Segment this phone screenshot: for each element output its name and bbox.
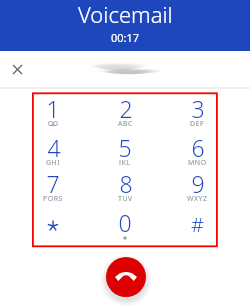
staticText: 0 [118, 207, 132, 238]
staticText: 9 [191, 168, 205, 199]
button[interactable]: Close [4, 56, 30, 82]
button[interactable] [23, 207, 83, 245]
button[interactable]: 3 [167, 93, 227, 131]
staticText: # [191, 211, 204, 238]
button[interactable]: 2 [95, 93, 155, 131]
button[interactable]: # [167, 207, 227, 245]
staticText: MNO [188, 158, 207, 165]
staticText: 7 [46, 168, 60, 199]
staticText: Voicemail [78, 0, 173, 29]
button[interactable]: 6 [167, 132, 227, 170]
staticText: JKL [119, 158, 131, 165]
staticText: GHI [46, 158, 61, 165]
button[interactable]: 5 [95, 132, 155, 170]
button[interactable]: 8 [95, 168, 155, 206]
button[interactable]: 7 [23, 168, 83, 206]
staticText: 8 [119, 168, 133, 199]
button[interactable]: 4 [23, 132, 83, 170]
staticText: 2 [119, 93, 133, 124]
staticText: TUV [118, 194, 133, 201]
button[interactable]: 9 [167, 168, 227, 206]
staticText: DEF [190, 119, 205, 126]
staticText: WXYZ [187, 194, 208, 201]
staticText: 5 [118, 132, 132, 163]
staticText: ABC [118, 119, 133, 126]
button[interactable]: End call [106, 257, 146, 297]
staticText: 3 [191, 93, 205, 124]
staticText: 1 [46, 93, 60, 124]
staticText: 6 [191, 132, 205, 163]
button[interactable]: 0 [95, 207, 155, 245]
staticText: 00:17 [111, 30, 140, 45]
button[interactable]: 1 [23, 93, 83, 131]
staticText: 4 [47, 132, 61, 163]
staticText: PQRS [43, 194, 63, 201]
